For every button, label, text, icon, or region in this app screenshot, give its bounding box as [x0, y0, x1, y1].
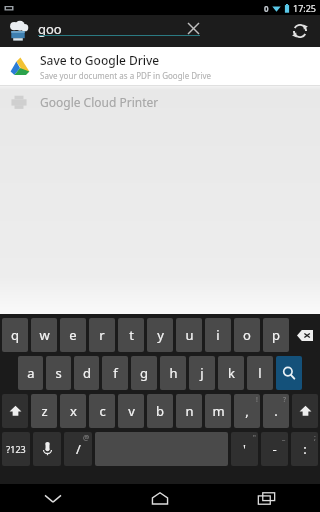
- button[interactable]: App icon: [3, 16, 33, 46]
- staticText: z: [41, 402, 48, 420]
- button[interactable]: q: [2, 318, 28, 352]
- button[interactable]: s: [46, 356, 71, 390]
- staticText: t: [129, 326, 134, 344]
- button[interactable]: Save to Google Drive: [0, 47, 320, 85]
- staticText: goo: [38, 20, 62, 38]
- staticText: .: [274, 402, 278, 420]
- staticText: k: [228, 364, 235, 382]
- staticText: b: [156, 402, 164, 420]
- staticText: s: [55, 364, 62, 382]
- staticText: _: [282, 433, 286, 443]
- staticText: o: [243, 326, 251, 344]
- button[interactable]: o: [234, 318, 260, 352]
- button[interactable]: Backspace: [292, 318, 318, 352]
- button[interactable]: x: [60, 394, 86, 428]
- staticText: i: [216, 326, 220, 344]
- staticText: d: [83, 364, 91, 382]
- button[interactable]: Google Cloud Printer: [0, 86, 320, 118]
- button[interactable]: Clear query: [182, 17, 204, 39]
- button[interactable]: m: [205, 394, 231, 428]
- button[interactable]: j: [189, 356, 215, 390]
- button[interactable]: Refresh: [285, 16, 315, 46]
- button[interactable]: b: [147, 394, 173, 428]
- button[interactable]: h: [160, 356, 186, 390]
- staticText: 0: [264, 3, 269, 14]
- staticText: v: [128, 402, 135, 420]
- staticText: y: [157, 326, 164, 344]
- button[interactable]: Voice input: [33, 432, 61, 466]
- button[interactable]: Shift: [292, 394, 318, 428]
- staticText: -: [272, 440, 277, 458]
- staticText: ?: [283, 395, 287, 405]
- button[interactable]: :: [291, 432, 318, 466]
- button[interactable]: Hide keyboard: [0, 484, 106, 512]
- button[interactable]: t: [118, 318, 144, 352]
- staticText: w: [39, 326, 50, 344]
- button[interactable]: k: [218, 356, 244, 390]
- button[interactable]: w: [31, 318, 57, 352]
- button[interactable]: z: [31, 394, 57, 428]
- button[interactable]: r: [89, 318, 115, 352]
- staticText: !: [256, 395, 258, 405]
- button[interactable]: l: [247, 356, 273, 390]
- staticText: j: [200, 364, 204, 382]
- staticText: n: [185, 402, 194, 420]
- staticText: f: [113, 364, 118, 382]
- button[interactable]: y: [147, 318, 173, 352]
- staticText: e: [69, 326, 77, 344]
- staticText: Save to Google Drive: [40, 52, 160, 68]
- button[interactable]: p: [263, 318, 289, 352]
- staticText: p: [272, 326, 280, 344]
- staticText: ': [243, 440, 246, 458]
- staticText: ": [253, 433, 256, 443]
- button[interactable]: ?123: [2, 432, 30, 466]
- staticText: m: [212, 402, 225, 420]
- button[interactable]: v: [118, 394, 144, 428]
- staticText: /: [76, 440, 81, 458]
- button[interactable]: ': [231, 432, 258, 466]
- button[interactable]: f: [102, 356, 128, 390]
- button[interactable]: n: [176, 394, 202, 428]
- button[interactable]: Search: [276, 356, 302, 390]
- button[interactable]: .: [263, 394, 289, 428]
- button[interactable]: e: [60, 318, 86, 352]
- staticText: x: [70, 402, 77, 420]
- staticText: g: [140, 364, 148, 382]
- staticText: h: [169, 364, 178, 382]
- staticText: a: [27, 364, 35, 382]
- staticText: r: [99, 326, 105, 344]
- staticText: c: [99, 402, 106, 420]
- staticText: @: [83, 433, 90, 443]
- staticText: u: [185, 326, 194, 344]
- staticText: ,: [245, 402, 249, 420]
- staticText: Save your document as a PDF in Google Dr…: [40, 70, 212, 81]
- button[interactable]: u: [176, 318, 202, 352]
- button[interactable]: d: [74, 356, 99, 390]
- staticText: ?123: [6, 443, 26, 455]
- staticText: l: [258, 364, 262, 382]
- staticText: q: [11, 326, 19, 344]
- button[interactable]: /: [64, 432, 92, 466]
- staticText: ;: [314, 433, 316, 443]
- staticText: 17:25: [293, 2, 317, 14]
- button[interactable]: a: [18, 356, 43, 390]
- button[interactable]: g: [131, 356, 157, 390]
- button[interactable]: c: [89, 394, 115, 428]
- button[interactable]: -: [261, 432, 288, 466]
- button[interactable]: goo: [38, 15, 62, 47]
- button[interactable]: i: [205, 318, 231, 352]
- button[interactable]: ,: [234, 394, 260, 428]
- button[interactable]: Recent apps: [213, 484, 320, 512]
- staticText: :: [303, 440, 307, 458]
- button[interactable]: Shift: [2, 394, 28, 428]
- staticText: Google Cloud Printer: [40, 94, 159, 110]
- button[interactable]: Home: [106, 484, 213, 512]
